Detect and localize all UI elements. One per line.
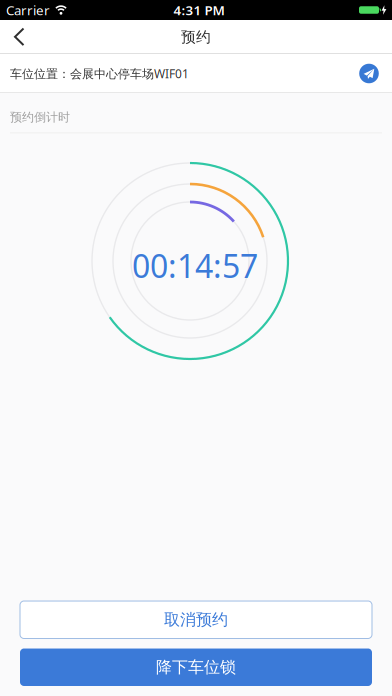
staticText: 取消预约 [164, 610, 228, 630]
button[interactable]: Back [0, 20, 41, 53]
staticText: 4:31 PM [173, 1, 224, 19]
staticText: Carrier [6, 1, 50, 19]
button[interactable]: 降下车位锁 [20, 648, 372, 686]
staticText: 00:14:57 [132, 244, 258, 287]
button[interactable]: 取消预约 [20, 601, 372, 638]
staticText: 车位位置：会展中心停车场WIF01 [10, 65, 189, 81]
staticText: 预约 [181, 28, 211, 46]
button[interactable]: Navigate to parking spot [359, 63, 379, 83]
staticText: 降下车位锁 [156, 657, 236, 677]
staticText: 预约倒计时 [10, 110, 70, 125]
